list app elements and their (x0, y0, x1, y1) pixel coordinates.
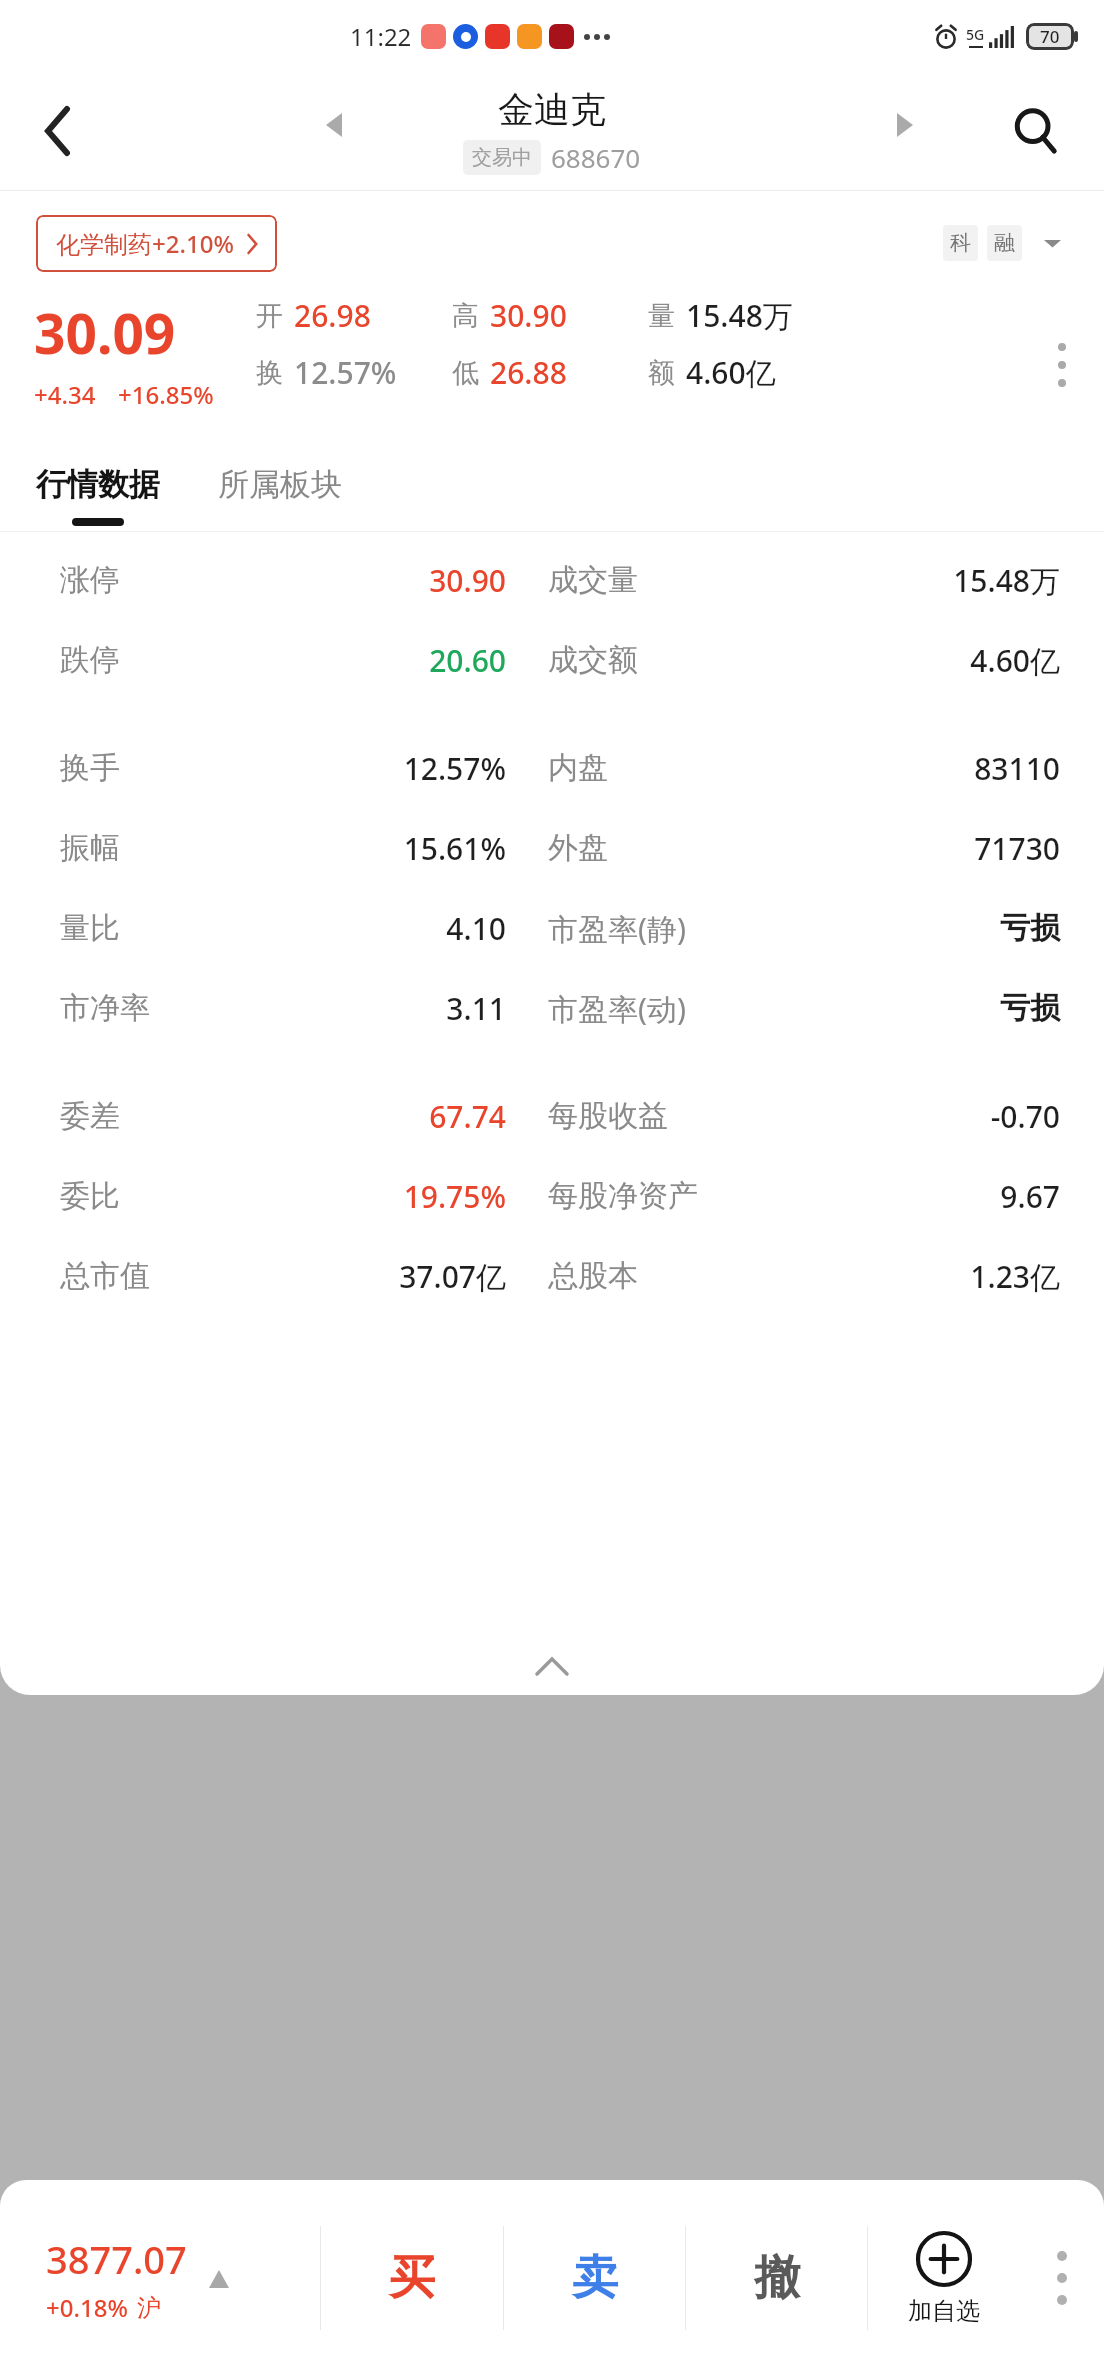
button[interactable]: 加自选 (868, 2230, 1020, 2326)
staticText: 成交量 (548, 561, 792, 599)
staticText: -0.70 (792, 1096, 1060, 1137)
staticText: 亏损 (792, 989, 1060, 1027)
staticText: +16.85% (118, 378, 214, 411)
staticText: 3877.07 (46, 2233, 187, 2285)
staticText: 9.67 (792, 1176, 1060, 1217)
button[interactable]: 竞价助手 (513, 848, 626, 900)
staticText: 加自选 (908, 2296, 980, 2326)
staticText: 量 (648, 299, 675, 333)
staticText: 37.07亿 (246, 1256, 506, 1297)
button[interactable]: 卖 (504, 2203, 685, 2353)
staticText: 高 (452, 299, 479, 333)
staticText: 升级lv2高速行情 (847, 760, 988, 786)
staticText: 换 (256, 356, 283, 390)
button[interactable]: 跌停 (0, 620, 1104, 700)
staticText: 低 (452, 356, 479, 390)
button[interactable]: 量比 (0, 888, 1104, 968)
button[interactable]: More quote options (1034, 295, 1090, 435)
staticText: 15.48万 (792, 560, 1060, 601)
staticText: 金迪克 (498, 87, 606, 132)
button[interactable]: 振幅 (0, 808, 1104, 888)
button[interactable]: 决策宝箱 (33, 848, 135, 900)
button[interactable]: Back (22, 96, 92, 166)
staticText: 换手 (60, 749, 246, 787)
staticText: 量比 (60, 909, 246, 947)
button[interactable]: Collapse (0, 1637, 1104, 1695)
button[interactable]: 3877.07 (0, 2233, 320, 2324)
staticText: 1.23亿 (792, 1256, 1060, 1297)
staticText: 15.61% (246, 828, 506, 869)
button[interactable]: 化学制药+2.10% (56, 227, 257, 260)
staticText: 跌停 (60, 641, 246, 679)
staticText: 3.11 (246, 988, 506, 1029)
staticText: 83110 (792, 748, 1060, 789)
staticText: 沪 (137, 2293, 161, 2323)
staticText: 30.90 (246, 560, 506, 601)
button[interactable]: 涨停 (0, 540, 1104, 620)
button[interactable]: 换手 (0, 728, 1104, 808)
staticText: 总市值 (60, 1257, 246, 1295)
staticText: 振幅 (60, 829, 246, 867)
staticText: 67.74 (246, 1096, 506, 1137)
staticText: 委差 (60, 1097, 246, 1135)
staticText: 11:22 (350, 20, 412, 53)
staticText: 5G (966, 25, 985, 44)
button[interactable]: More actions (1020, 2213, 1104, 2343)
staticText: 4.60亿 (686, 352, 776, 393)
staticText: 买 (389, 2249, 435, 2307)
staticText: 所属板块 (218, 465, 342, 504)
staticText: 内盘 (548, 749, 792, 787)
button[interactable]: More tags (1036, 227, 1068, 259)
staticText: 撤 (754, 2249, 800, 2307)
staticText: 26.98 (294, 295, 371, 336)
staticText: 市盈率(静) (548, 908, 792, 949)
staticText: 12.57% (294, 352, 397, 393)
staticText: 每股净资产 (548, 1177, 792, 1215)
button[interactable]: 所属板块 (218, 465, 342, 531)
staticText: +4.34 (34, 378, 96, 411)
button[interactable]: 委差 (0, 1076, 1104, 1156)
staticText: 30.09 (34, 295, 176, 370)
button[interactable]: 委比 (0, 1156, 1104, 1236)
button[interactable]: 六维判势 (360, 848, 473, 900)
staticText: 4.60亿 (792, 640, 1060, 681)
staticText: 卖 (572, 2249, 618, 2307)
button[interactable]: 买 (321, 2203, 503, 2353)
button[interactable]: Next stock (881, 101, 929, 149)
staticText: 成交额 (548, 641, 792, 679)
button[interactable]: 总市值 (0, 1236, 1104, 1316)
staticText: 额 (648, 356, 675, 390)
staticText: 12.57% (246, 748, 506, 789)
staticText: 市盈率(动) (548, 988, 792, 1029)
button[interactable]: 行情数据 (36, 465, 160, 531)
staticText: 71730 (792, 828, 1060, 869)
button[interactable]: 市净率 (0, 968, 1104, 1048)
button[interactable]: 升级lv2高速行情 (748, 745, 1104, 801)
staticText: 涨停 (60, 561, 246, 599)
staticText: 亏损 (792, 909, 1060, 947)
staticText: 科 (950, 230, 971, 256)
staticText: 30.06 (977, 569, 1021, 592)
button[interactable]: Search (998, 93, 1074, 169)
staticText: 19.75% (246, 1176, 506, 1217)
button[interactable]: 撤 (686, 2203, 867, 2353)
staticText: 688670 (551, 140, 641, 175)
staticText: 化学制药+2.10% (56, 227, 234, 260)
staticText: 行情数据 (36, 465, 160, 504)
button[interactable]: Previous stock (310, 101, 358, 149)
